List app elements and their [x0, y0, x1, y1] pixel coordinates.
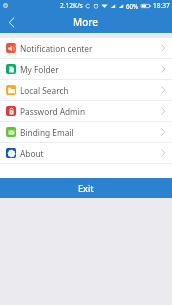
- staticText: Notification center: [20, 43, 93, 54]
- staticText: More: [73, 15, 99, 29]
- staticText: Exit: [78, 182, 94, 194]
- staticText: Local Search: [20, 85, 69, 96]
- staticText: 60%: [126, 2, 139, 10]
- button[interactable]: Password Admin: [0, 101, 172, 121]
- staticText: About: [20, 148, 44, 159]
- button[interactable]: About: [0, 143, 172, 163]
- button[interactable]: Exit: [0, 178, 172, 198]
- button[interactable]: Notification center: [0, 38, 172, 58]
- button[interactable]: Local Search: [0, 80, 172, 100]
- button[interactable]: My Folder: [0, 59, 172, 79]
- button[interactable]: Back: [0, 11, 24, 33]
- staticText: 2.12K/s: [60, 1, 83, 10]
- staticText: 18:37: [153, 1, 170, 10]
- staticText: Binding Email: [20, 127, 74, 138]
- button[interactable]: Binding Email: [0, 122, 172, 142]
- staticText: My Folder: [20, 64, 59, 75]
- staticText: Password Admin: [20, 106, 86, 117]
